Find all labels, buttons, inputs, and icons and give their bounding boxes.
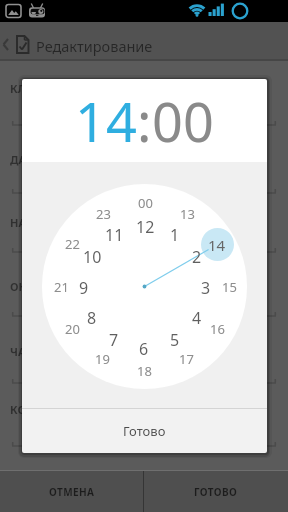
staticText: 11	[105, 224, 124, 244]
staticText: :	[137, 84, 152, 158]
staticText: 15	[222, 278, 237, 296]
staticText: ЧАСТОТА	[10, 344, 61, 359]
staticText: ДАТА	[10, 152, 39, 167]
staticText: 12	[136, 216, 155, 236]
staticText: 00	[138, 194, 153, 212]
staticText: 21	[54, 278, 69, 296]
staticText: 23	[96, 205, 111, 223]
staticText: Готово	[123, 422, 166, 440]
staticText: 17	[179, 350, 194, 368]
staticText: 00	[152, 84, 214, 158]
staticText: 10	[83, 246, 102, 266]
staticText: 18	[137, 362, 152, 380]
staticText: 7	[109, 329, 119, 349]
staticText: КОММЕНТ	[10, 402, 68, 417]
staticText: ОТМЕНА	[49, 485, 95, 499]
button[interactable]: ОТМЕНА	[0, 471, 143, 512]
staticText: 19	[95, 350, 110, 368]
staticText: 16	[210, 320, 225, 338]
staticText: 13	[180, 205, 195, 223]
staticText: 14	[75, 84, 137, 158]
staticText: 8	[87, 307, 97, 327]
staticText: 20	[65, 320, 80, 338]
staticText: КЛИЕНТ	[10, 81, 56, 96]
staticText: 9	[79, 277, 89, 297]
staticText: Редактирование	[36, 36, 153, 56]
staticText: 22	[65, 235, 80, 253]
staticText: НАЧАЛО	[10, 215, 58, 230]
staticText: 2	[192, 246, 202, 266]
staticText: ГОТОВО	[194, 485, 238, 499]
staticText: 4	[192, 307, 202, 327]
staticText: 5	[170, 329, 180, 349]
staticText: ОКОНЧ	[10, 279, 51, 294]
button[interactable]: ГОТОВО	[144, 471, 288, 512]
staticText: 14	[208, 235, 226, 255]
button[interactable]: Готово	[22, 409, 267, 453]
staticText: 6	[139, 338, 149, 358]
button[interactable]	[0, 22, 34, 60]
staticText: 1	[170, 224, 180, 244]
staticText: 3	[201, 277, 211, 297]
